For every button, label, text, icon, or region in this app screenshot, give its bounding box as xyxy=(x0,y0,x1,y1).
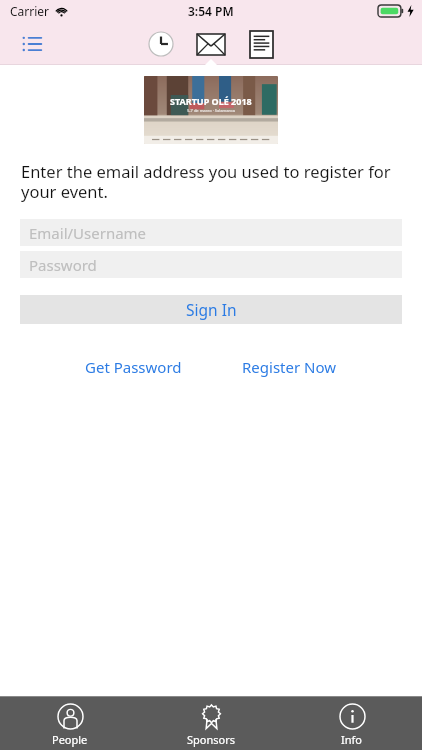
button[interactable]: Register Now xyxy=(236,353,343,381)
staticText: Sign In xyxy=(186,299,237,320)
staticText: Enter the email address you used to regi… xyxy=(21,160,401,203)
button[interactable]: Sign In xyxy=(20,295,402,324)
button[interactable]: Info xyxy=(281,697,422,750)
staticText: Email/Username xyxy=(29,223,147,243)
button[interactable]: Messages xyxy=(193,26,229,62)
staticText: STARTUP OLÉ 2018 xyxy=(170,95,252,107)
staticText: 3:54 PM xyxy=(188,3,234,19)
button[interactable]: Event banner xyxy=(144,76,278,144)
button[interactable]: Sponsors xyxy=(140,697,281,750)
staticText: People xyxy=(52,732,88,747)
staticText: Password xyxy=(29,255,97,275)
button[interactable]: Email/Username xyxy=(20,219,402,246)
staticText: Sponsors xyxy=(187,732,235,747)
button[interactable]: Get Password xyxy=(79,353,188,381)
button[interactable]: Menu xyxy=(16,27,50,61)
button[interactable]: Documents xyxy=(243,26,279,62)
staticText: 5-7 de marzo · Salamanca xyxy=(187,108,236,113)
staticText: Carrier xyxy=(10,3,50,19)
staticText: Get Password xyxy=(85,357,182,377)
staticText: Register Now xyxy=(242,357,337,377)
staticText: Info xyxy=(341,732,362,747)
button[interactable]: Password xyxy=(20,251,402,278)
button[interactable]: Schedule xyxy=(143,26,179,62)
button[interactable]: People xyxy=(0,697,140,750)
